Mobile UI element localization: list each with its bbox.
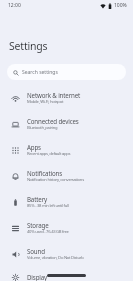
staticText: 85% - 38 min left until full: [27, 203, 69, 209]
staticText: Settings: [9, 39, 48, 53]
staticText: Notifications: [27, 169, 63, 177]
button[interactable]: Notifications: [0, 163, 133, 189]
button[interactable]: Apps: [0, 137, 133, 163]
staticText: Storage: [27, 221, 49, 229]
button[interactable]: Connected devices: [0, 111, 133, 137]
staticText: 12:00: [8, 2, 21, 9]
staticText: Connected devices: [27, 117, 79, 125]
button[interactable]: Network & internet: [0, 85, 133, 111]
staticText: Battery: [27, 195, 48, 203]
staticText: Bluetooth, pairing: [27, 125, 58, 131]
staticText: Recent apps, default apps: [27, 151, 71, 157]
staticText: Volume, vibration, Do Not Disturb: [27, 255, 84, 261]
button[interactable]: Storage: [0, 215, 133, 241]
button[interactable]: Sound: [0, 241, 133, 267]
button[interactable]: Display: [0, 267, 133, 281]
button[interactable]: Search settings: [7, 64, 126, 80]
staticText: Mobile, Wi‑Fi, hotspot: [27, 99, 64, 105]
staticText: Sound: [27, 247, 45, 255]
staticText: Notification history, conversations: [27, 177, 84, 183]
staticText: 100%: [114, 2, 127, 9]
staticText: Apps: [27, 143, 41, 151]
staticText: Search settings: [22, 69, 58, 76]
staticText: 40% used - 76.43 GB free: [27, 229, 69, 235]
staticText: Network & internet: [27, 91, 81, 99]
staticText: Display: [27, 273, 48, 281]
button[interactable]: Battery: [0, 189, 133, 215]
